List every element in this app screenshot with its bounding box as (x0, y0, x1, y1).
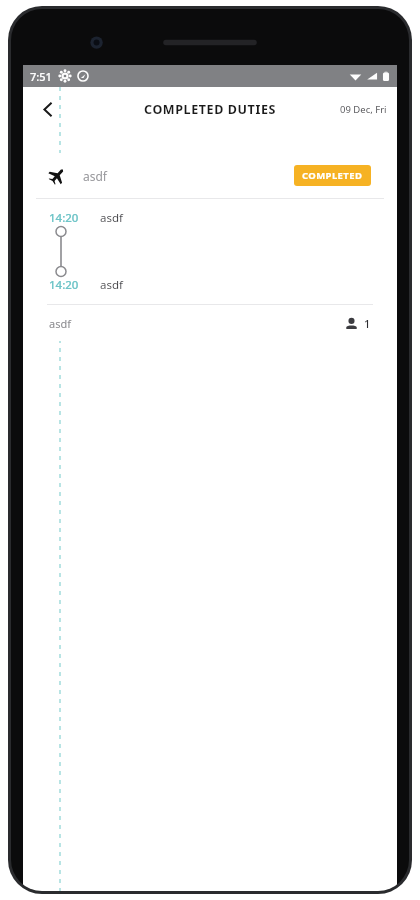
staticText: asdf (100, 277, 123, 293)
button[interactable]: asdf (36, 153, 384, 341)
staticText: asdf (49, 316, 71, 331)
staticText: 14:20 (49, 210, 79, 226)
staticText: 14:20 (49, 277, 79, 293)
staticText: 1 (364, 316, 371, 331)
button[interactable]: Back (29, 90, 67, 128)
staticText: asdf (100, 210, 123, 226)
staticText: COMPLETED (302, 169, 363, 182)
staticText: COMPLETED DUTIES (144, 101, 276, 118)
button[interactable]: COMPLETED (294, 165, 371, 186)
staticText: 7:51 (30, 69, 52, 84)
staticText: asdf (83, 168, 107, 184)
staticText: 09 Dec, Fri (340, 103, 387, 116)
